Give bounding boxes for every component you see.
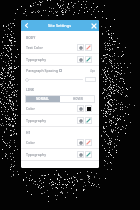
staticText: H1 [26, 130, 31, 134]
staticText: LINK [26, 87, 34, 91]
button[interactable]: Back [21, 20, 32, 31]
button[interactable]: Close [88, 20, 99, 31]
staticText: Color [26, 106, 36, 111]
button[interactable]: Option [85, 117, 92, 124]
button[interactable]: Typography [21, 54, 99, 65]
button[interactable]: Option [77, 44, 84, 51]
staticText: NORMAL [36, 97, 49, 101]
button[interactable]: Color [21, 103, 99, 114]
staticText: 4px [90, 69, 96, 73]
button[interactable]: Option [77, 117, 84, 124]
button[interactable]: Option [85, 44, 92, 51]
staticText: Color [26, 140, 36, 145]
staticText: Site Settings [48, 23, 72, 28]
button[interactable]: Typography [21, 149, 99, 160]
button[interactable]: Option [85, 151, 92, 158]
staticText: Typography [26, 57, 47, 62]
button[interactable]: Option [77, 56, 84, 63]
button[interactable]: Color [21, 137, 99, 148]
staticText: Text Color [26, 45, 43, 50]
button[interactable]: Option [85, 105, 92, 112]
button[interactable]: Option [85, 139, 92, 146]
button[interactable]: Option [77, 139, 84, 146]
button[interactable]: HOVER [60, 95, 95, 103]
staticText: Paragraph Spacing [26, 68, 58, 73]
button[interactable]: Paragraph Spacing [21, 66, 99, 75]
staticText: BODY [26, 35, 36, 39]
staticText: HOVER [73, 97, 83, 101]
button[interactable]: NORMAL [25, 95, 60, 103]
staticText: Typography [26, 152, 47, 157]
button[interactable]: Option [85, 56, 92, 63]
staticText: Typography [26, 118, 47, 123]
button[interactable]: Option [77, 105, 84, 112]
button[interactable]: Option [77, 151, 84, 158]
button[interactable]: Text Color [21, 42, 99, 53]
button[interactable]: Typography [21, 115, 99, 126]
